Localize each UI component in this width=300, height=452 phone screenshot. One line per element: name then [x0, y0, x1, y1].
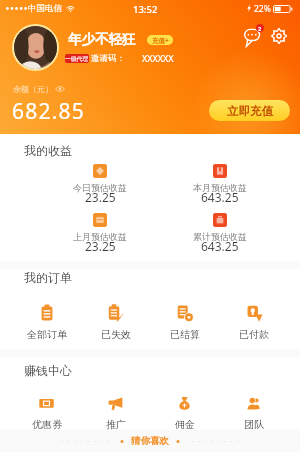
button[interactable]: 已结算 [150, 304, 219, 341]
staticText: 猜你喜欢 [131, 435, 169, 447]
staticText: 邀请码： [91, 53, 125, 64]
staticText: 中国电信 [28, 3, 62, 14]
button[interactable]: Profile photo [12, 24, 59, 71]
button[interactable]: Messages [243, 25, 263, 45]
button[interactable]: 佣金 [150, 396, 219, 431]
staticText: 团队 [244, 418, 264, 431]
button[interactable]: 已付款 [219, 304, 288, 341]
staticText: 优惠券 [32, 418, 62, 431]
button[interactable]: Settings [270, 27, 288, 45]
staticText: 我的订单 [24, 270, 72, 285]
button[interactable]: 优惠券 [12, 396, 81, 431]
staticText: 2 [258, 25, 262, 32]
staticText: 已失效 [101, 328, 131, 341]
button[interactable]: 累计预估收益 [160, 213, 280, 258]
button[interactable]: 推广 [81, 396, 150, 431]
staticText: 已付款 [239, 328, 269, 341]
staticText: 佣金 [175, 418, 195, 431]
button[interactable]: 充值+ [147, 35, 173, 45]
staticText: 立即充值 [227, 104, 273, 118]
button[interactable]: 团队 [219, 396, 288, 431]
staticText: 已结算 [170, 328, 200, 341]
staticText: 13:52 [133, 3, 158, 16]
staticText: 643.25 [201, 189, 239, 205]
staticText: 上月预估收益 [73, 231, 127, 242]
staticText: 一级代理 [65, 55, 89, 62]
staticText: 累计预估收益 [193, 231, 247, 242]
staticText: 今日预估收益 [73, 182, 127, 193]
staticText: 充值+ [152, 36, 169, 45]
staticText: 赚钱中心 [24, 363, 72, 378]
staticText: 23.25 [85, 238, 116, 254]
staticText: XXXXXX [142, 52, 174, 64]
staticText: 643.25 [201, 238, 239, 254]
button[interactable]: 上月预估收益 [40, 213, 160, 258]
staticText: 推广 [106, 418, 126, 431]
button[interactable]: 本月预估收益 [160, 164, 280, 209]
button[interactable]: 全部订单 [12, 304, 81, 341]
staticText: 22% [254, 3, 271, 15]
button[interactable]: 已失效 [81, 304, 150, 341]
staticText: 本月预估收益 [193, 182, 247, 193]
staticText: 余额（元） [13, 84, 53, 94]
staticText: 全部订单 [27, 328, 67, 341]
staticText: 年少不轻狂 [68, 31, 136, 48]
staticText: 682.85 [12, 97, 85, 126]
button[interactable]: 今日预估收益 [40, 164, 160, 209]
button[interactable]: 立即充值 [209, 100, 290, 121]
staticText: 23.25 [85, 189, 116, 205]
staticText: 我的收益 [24, 143, 72, 158]
